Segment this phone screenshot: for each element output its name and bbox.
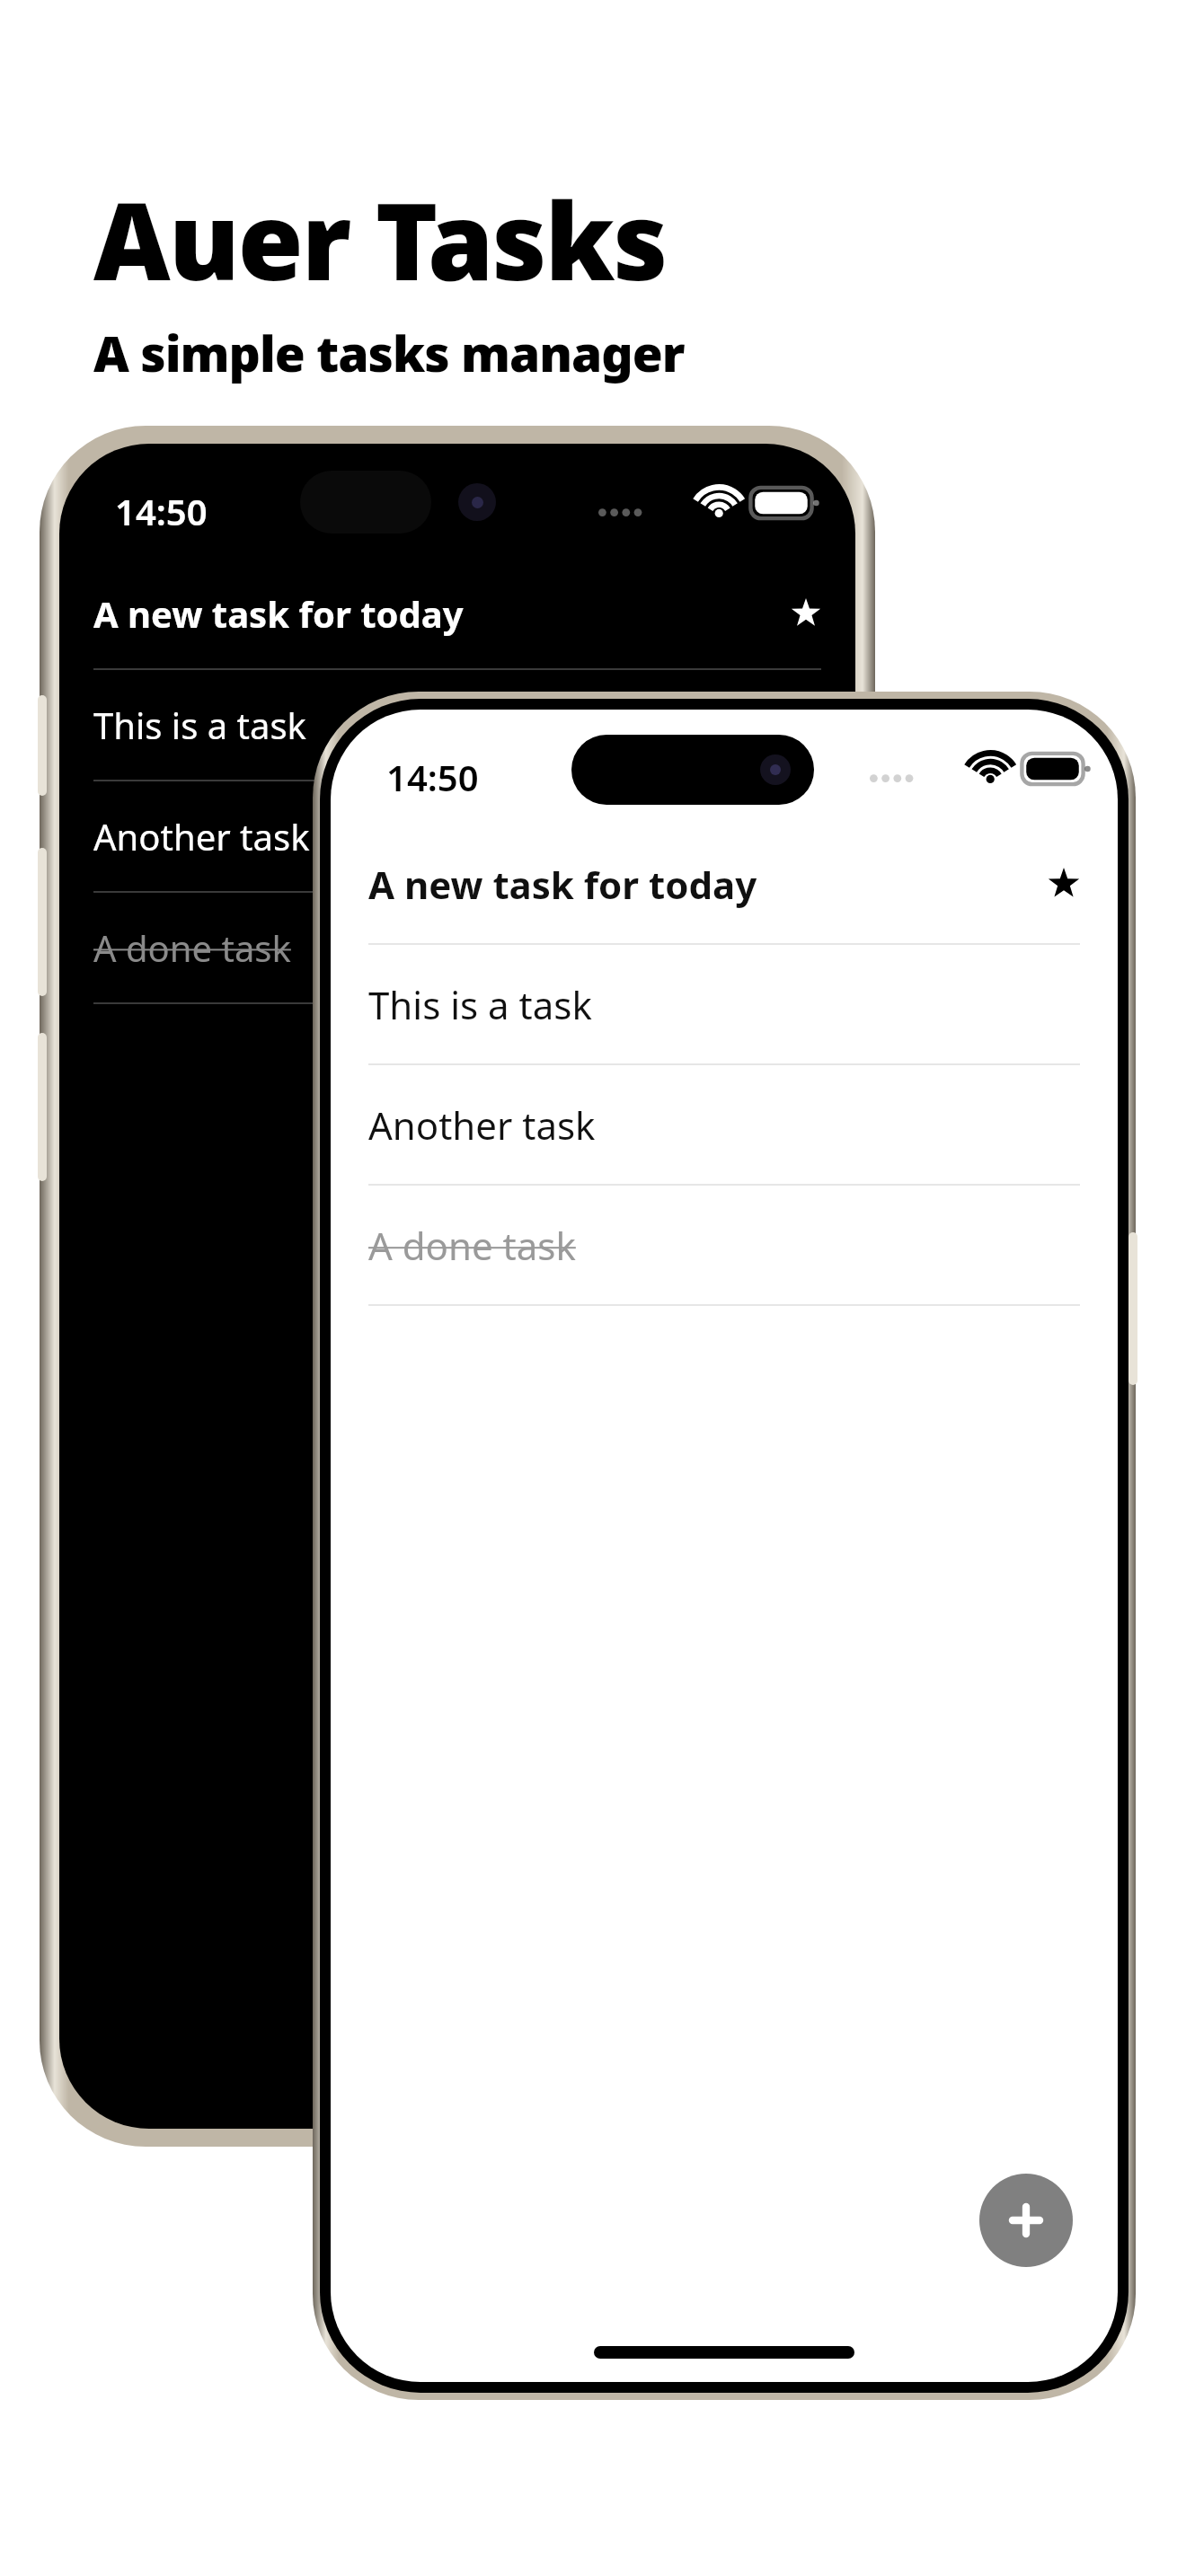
staticText: A done task: [93, 923, 291, 972]
staticText: This is a task: [368, 979, 592, 1030]
staticText: 14:50: [115, 487, 208, 535]
button[interactable]: A done task: [331, 1186, 1118, 1306]
staticText: Another task: [368, 1099, 596, 1151]
staticText: A new task for today: [368, 859, 757, 910]
staticText: Another task: [93, 812, 310, 860]
staticText: A new task for today: [93, 589, 464, 638]
button[interactable]: A new task for today: [331, 825, 1118, 945]
button[interactable]: A done task: [59, 893, 855, 1004]
staticText: Auer Tasks: [93, 167, 667, 312]
button[interactable]: This is a task: [59, 670, 855, 781]
other: Favourite: [791, 598, 821, 629]
other: Favourite: [1048, 868, 1080, 900]
staticText: A done task: [368, 1220, 576, 1271]
button[interactable]: Another task: [59, 781, 855, 893]
button[interactable]: This is a task: [331, 945, 1118, 1065]
button[interactable]: Another task: [331, 1065, 1118, 1186]
staticText: This is a task: [93, 701, 306, 749]
staticText: 14:50: [386, 753, 479, 801]
button[interactable]: A new task for today: [59, 559, 855, 670]
button[interactable]: Add task: [979, 2174, 1073, 2267]
staticText: A simple tasks manager: [93, 319, 685, 386]
